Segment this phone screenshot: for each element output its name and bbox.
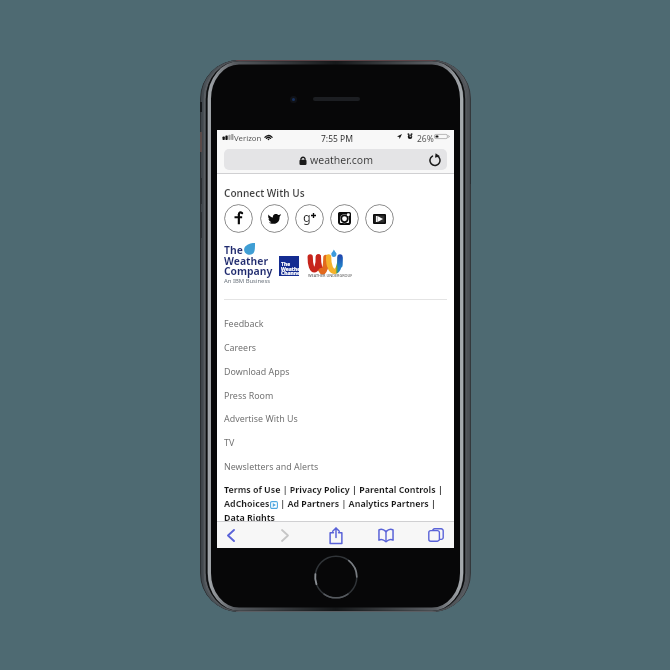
staticText: weather.com (310, 153, 373, 167)
staticText: Company (224, 264, 273, 278)
staticText: Careers (224, 341, 257, 353)
staticText: The (224, 243, 243, 257)
staticText: 7:55 PM (321, 133, 354, 145)
staticText: 26% (417, 133, 434, 145)
button[interactable]: Careers (217, 335, 454, 359)
staticText: Download Apps (224, 365, 290, 377)
button[interactable]: Back (215, 523, 247, 547)
button[interactable]: Terms of Use | Privacy Policy | Parental… (224, 484, 443, 496)
staticText: WEATHER UNDERGROUND (308, 273, 352, 278)
staticText: An IBM Business (224, 277, 271, 285)
button[interactable]: Facebook (224, 204, 253, 233)
button[interactable]: Press Room (217, 383, 454, 407)
button[interactable]: Share (320, 523, 352, 547)
button[interactable]: Bookmarks (370, 523, 402, 547)
staticText: | Ad Partners | Analytics Partners | (278, 498, 436, 510)
button[interactable]: Data Rights (224, 512, 275, 521)
button[interactable]: Reload (428, 153, 442, 167)
button[interactable]: Newsletters and Alerts (217, 454, 454, 478)
staticText: Weather (281, 266, 301, 273)
button[interactable]: Feedback (217, 311, 454, 335)
button[interactable]: TV (217, 430, 454, 454)
button[interactable]: Google Plus (295, 204, 324, 233)
button[interactable]: Forward (269, 523, 301, 547)
staticText: Press Room (224, 389, 274, 401)
staticText: Channel (281, 270, 301, 277)
button[interactable]: Tabs (420, 523, 452, 547)
button[interactable]: Download Apps (217, 359, 454, 383)
staticText: Advertise With Us (224, 412, 298, 424)
button[interactable]: YouTube (365, 204, 394, 233)
button[interactable]: weather.com (224, 149, 447, 170)
button[interactable]: Advertise With Us (217, 406, 454, 430)
staticText: Feedback (224, 317, 264, 329)
button[interactable]: Instagram (330, 204, 359, 233)
staticText: g (303, 209, 311, 226)
staticText: Verizon (234, 133, 262, 144)
button[interactable]: Twitter (260, 204, 289, 233)
button[interactable]: AdChoices (224, 498, 270, 510)
staticText: Weather (224, 254, 268, 268)
staticText: TV (224, 436, 235, 448)
staticText: Connect With Us (224, 186, 305, 200)
staticText: Newsletters and Alerts (224, 460, 319, 472)
button[interactable]: The (279, 256, 299, 276)
staticText: The (281, 261, 291, 268)
